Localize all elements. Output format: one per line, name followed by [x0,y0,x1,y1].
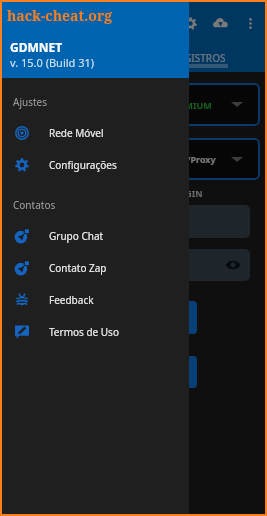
button[interactable]: Show password [223,255,243,275]
staticText: Rede Móvel [49,126,104,140]
button[interactable]: Contato Zap [2,252,189,284]
button[interactable]: More options [236,9,264,37]
button[interactable]: senha [12,249,250,281]
staticText: GDMNET [10,39,63,55]
button[interactable]: Download updates [206,9,234,37]
staticText: senha [21,258,50,272]
button[interactable]: CONEXÃO SSH DIRECT COM PAYLOAD/Proxy [12,138,260,180]
staticText: Contato Zap [49,261,107,275]
button[interactable]: REGISTROS [133,45,265,71]
staticText: Ajustes [13,95,47,109]
staticText: v. 15.0 (Build 31) [10,55,95,70]
staticText: CONEXÃO [44,51,92,65]
button[interactable]: Configurações [2,149,189,181]
staticText: Termos de Uso [49,325,119,339]
staticText: CONEXÃO SSH DIRECT COM PAYLOAD/Proxy [22,153,216,165]
button[interactable]: Termos de Uso [2,316,189,348]
staticText: Grupo Chat [49,229,104,243]
staticText: GDMNET V2 PRIVATE - SERVIDOR PREMIUM [22,99,212,111]
staticText: Configurações [49,158,117,172]
staticText: REGISTROS [172,51,226,65]
button[interactable]: Rede Móvel [2,117,189,149]
button[interactable]: usuario [12,205,250,238]
button[interactable]: Feedback [2,284,189,316]
staticText: Contatos [13,198,56,212]
button[interactable]: GDMNET V2 PRIVATE - SERVIDOR PREMIUM [12,83,260,126]
button[interactable]: Grupo Chat [2,220,189,252]
button[interactable]: ATUALIZAR [12,356,197,388]
button[interactable]: CONECTAR [12,301,197,334]
button[interactable]: CONEXÃO [2,45,133,71]
staticText: DADOS PARA EFETUAR O LOGIN [63,187,203,199]
button[interactable]: Settings [176,9,204,37]
staticText: Feedback [49,293,94,307]
staticText: hack-cheat.org [7,6,113,25]
